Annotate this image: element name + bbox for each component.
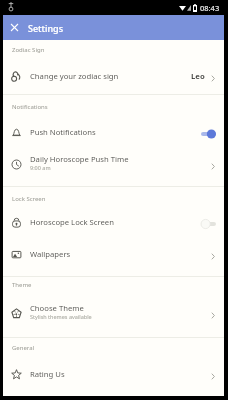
button[interactable]: Rating Us <box>3 358 224 390</box>
button[interactable]: Toggle on <box>201 128 216 140</box>
staticText: Stylish themes available <box>30 313 92 320</box>
staticText: Theme <box>12 281 32 289</box>
staticText: Wallpapers <box>30 249 71 259</box>
staticText: Push Notifications <box>30 127 96 137</box>
staticText: 08:43 <box>200 3 220 13</box>
button[interactable]: Change your zodiac sign <box>3 60 224 92</box>
staticText: Leo <box>191 71 205 81</box>
button[interactable]: Close <box>3 15 25 40</box>
button[interactable]: Daily Horoscope Push Time <box>3 148 224 180</box>
staticText: Notifications <box>12 103 48 111</box>
staticText: 9:00 am <box>30 164 51 171</box>
button[interactable]: Push Notifications <box>3 116 224 148</box>
staticText: Change your zodiac sign <box>30 71 119 81</box>
staticText: Lock Screen <box>12 195 46 203</box>
staticText: Choose Theme <box>30 303 84 313</box>
staticText: Rating Us <box>30 369 65 379</box>
button[interactable]: Horoscope Lock Screen <box>3 206 224 238</box>
button[interactable]: Wallpapers <box>3 238 224 270</box>
button[interactable]: Toggle off <box>201 218 216 230</box>
staticText: Daily Horoscope Push Time <box>30 154 129 164</box>
staticText: Zodiac Sign <box>12 46 45 54</box>
staticText: Settings <box>28 22 64 34</box>
staticText: General <box>12 344 35 352</box>
staticText: Horoscope Lock Screen <box>30 217 114 227</box>
button[interactable]: Choose Theme <box>3 297 224 329</box>
